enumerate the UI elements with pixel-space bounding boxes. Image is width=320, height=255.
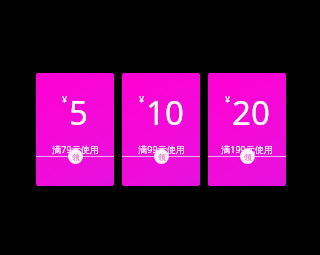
staticText: 领 xyxy=(72,152,80,162)
button[interactable]: 领取 xyxy=(154,149,169,164)
button[interactable]: 领取 xyxy=(240,149,255,164)
button[interactable]: ¥ xyxy=(122,73,200,186)
staticText: 20 xyxy=(232,90,270,135)
button[interactable]: 领取 xyxy=(68,149,83,164)
staticText: 满99元使用 xyxy=(138,143,185,155)
staticText: 5 xyxy=(69,90,88,135)
staticText: ¥ xyxy=(139,93,145,105)
staticText: 满199元使用 xyxy=(221,143,273,155)
staticText: ¥ xyxy=(225,93,231,105)
button[interactable]: ¥ xyxy=(208,73,286,186)
staticText: ¥ xyxy=(62,93,68,105)
staticText: 领 xyxy=(244,152,252,162)
button[interactable]: ¥ xyxy=(36,73,114,186)
staticText: 领 xyxy=(158,152,166,162)
staticText: 10 xyxy=(146,90,184,135)
staticText: 满79元使用 xyxy=(52,143,99,155)
